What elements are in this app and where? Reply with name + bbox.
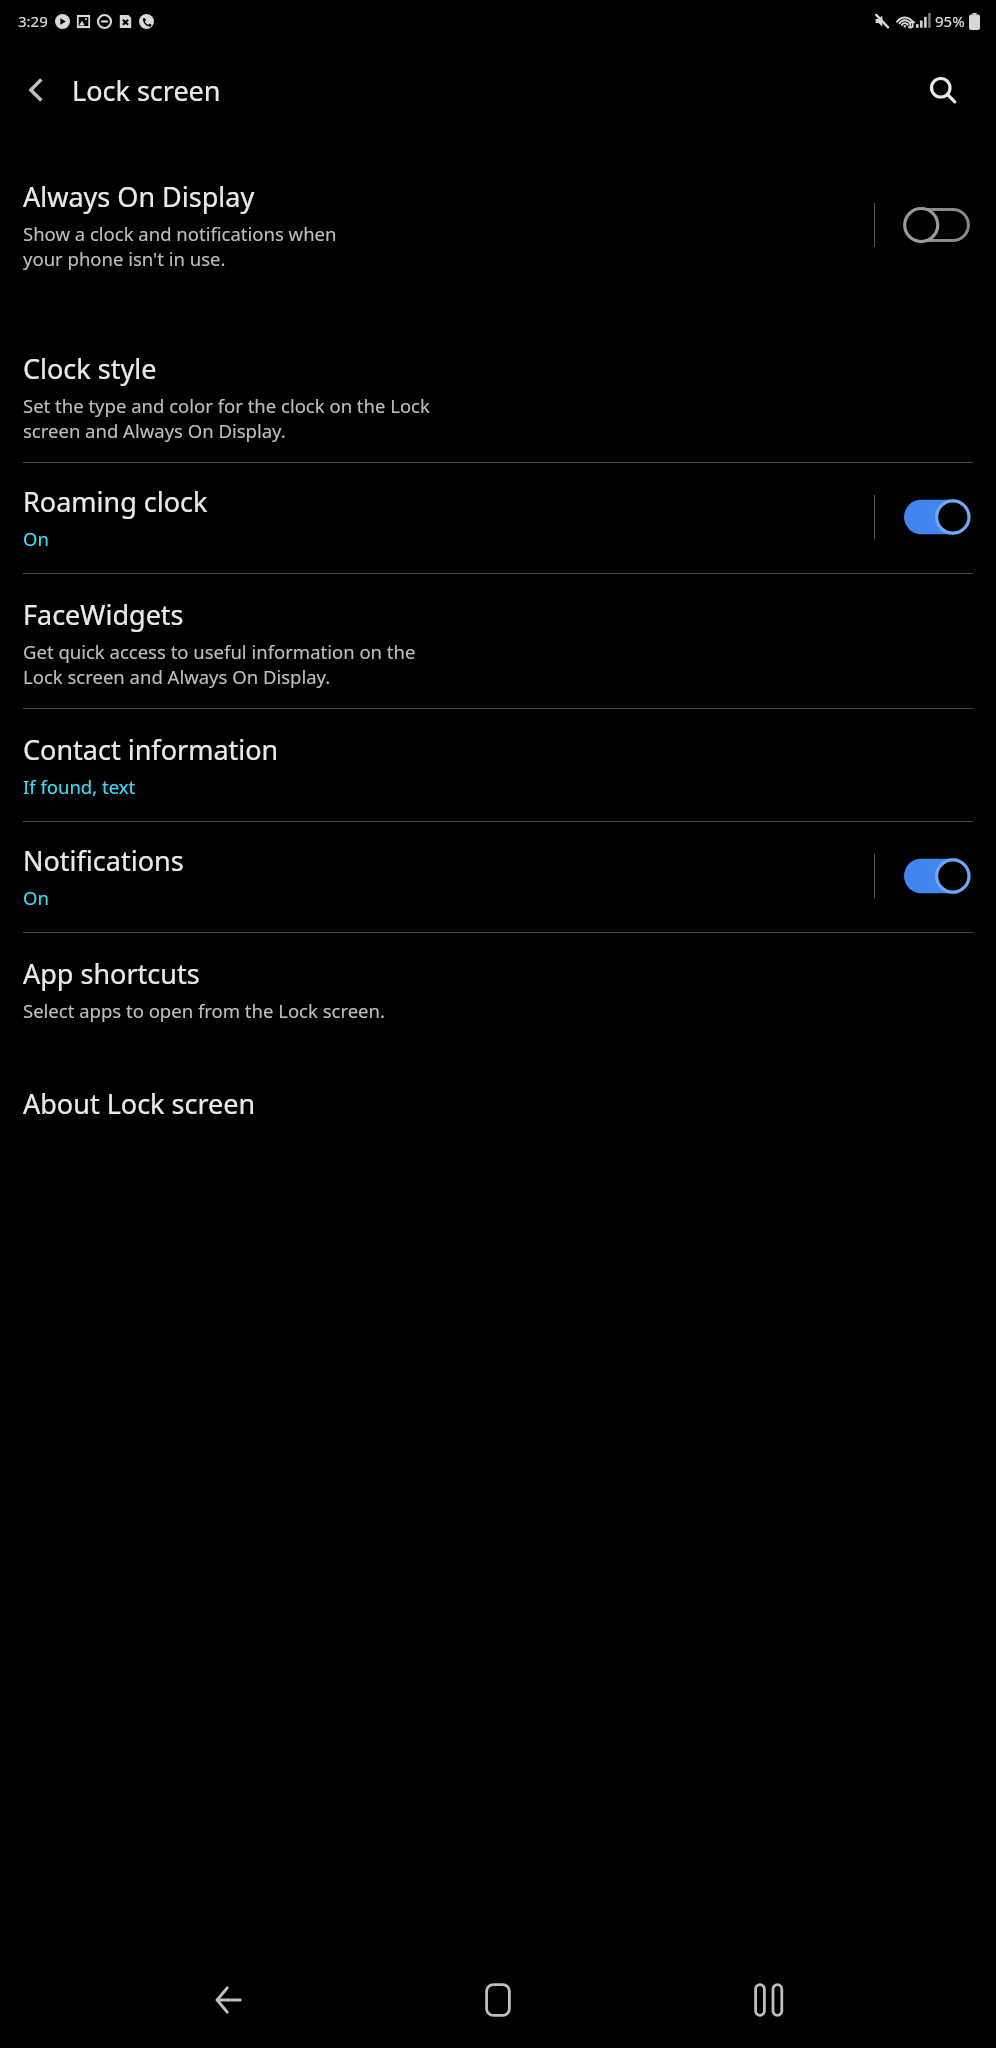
staticText: Get quick access to useful information o… [23, 639, 416, 690]
staticText: On [23, 885, 49, 910]
button[interactable]: FaceWidgets [0, 574, 996, 708]
button[interactable]: Contact information [0, 709, 996, 821]
staticText: Notifications [23, 842, 184, 879]
staticText: If found, text [23, 774, 136, 799]
button[interactable]: Toggle on [896, 850, 978, 902]
button[interactable]: Back [185, 1957, 271, 2043]
staticText: 3:29 [18, 11, 48, 31]
staticText: About Lock screen [23, 1085, 256, 1122]
staticText: Always On Display [23, 178, 255, 215]
button[interactable]: App shortcuts [0, 933, 996, 1041]
staticText: Lock screen [72, 72, 221, 109]
staticText: 95% [935, 11, 965, 31]
staticText: Show a clock and notifications when your… [23, 221, 337, 272]
staticText: Clock style [23, 350, 157, 387]
staticText: Select apps to open from the Lock screen… [23, 998, 385, 1023]
button[interactable]: About Lock screen [0, 1085, 996, 1132]
button[interactable]: Back [0, 54, 72, 126]
staticText: Contact information [23, 731, 279, 768]
staticText: App shortcuts [23, 955, 200, 992]
button[interactable]: Clock style [0, 350, 996, 462]
staticText: On [23, 526, 49, 551]
button[interactable]: Home [455, 1957, 541, 2043]
staticText: Roaming clock [23, 483, 208, 520]
button[interactable]: Search [912, 59, 974, 121]
button[interactable]: Toggle on [896, 491, 978, 543]
staticText: Set the type and color for the clock on … [23, 393, 430, 444]
button[interactable]: Roaming clock [0, 463, 996, 573]
button[interactable]: Notifications [0, 822, 996, 932]
button[interactable]: Recent apps [726, 1957, 812, 2043]
button[interactable]: Toggle off [896, 199, 978, 251]
button[interactable]: Always On Display [0, 160, 996, 302]
staticText: FaceWidgets [23, 596, 184, 633]
